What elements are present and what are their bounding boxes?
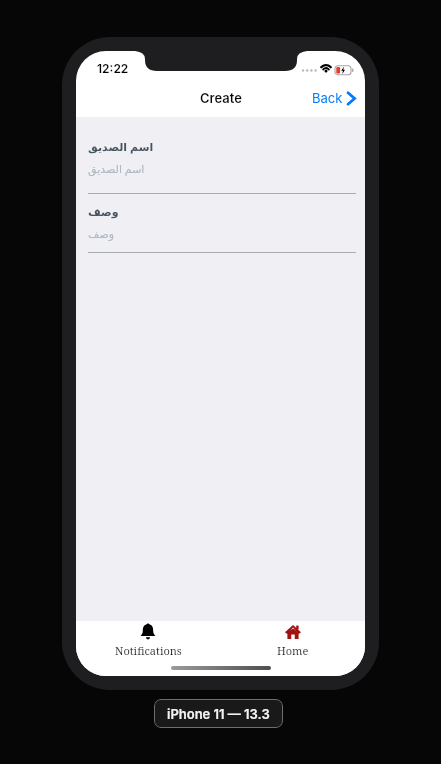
- staticText: اسم الصديق: [88, 161, 145, 176]
- button[interactable]: Home: [220, 621, 365, 676]
- button[interactable]: Notifications: [76, 621, 220, 676]
- staticText: iPhone 11 — 13.3: [167, 706, 270, 722]
- staticText: 12:22: [97, 61, 129, 76]
- button[interactable]: اسم الصديق: [88, 161, 365, 176]
- staticText: Notifications: [115, 643, 182, 658]
- button[interactable]: iPhone 11 — 13.3: [154, 699, 283, 728]
- staticText: Home: [277, 643, 309, 658]
- button[interactable]: Back: [312, 90, 357, 106]
- staticText: Back: [312, 90, 343, 106]
- staticText: Create: [200, 90, 242, 106]
- staticText: وصف: [88, 206, 119, 219]
- button[interactable]: وصف: [88, 228, 365, 241]
- staticText: وصف: [88, 228, 115, 241]
- staticText: اسم الصديق: [88, 139, 154, 154]
